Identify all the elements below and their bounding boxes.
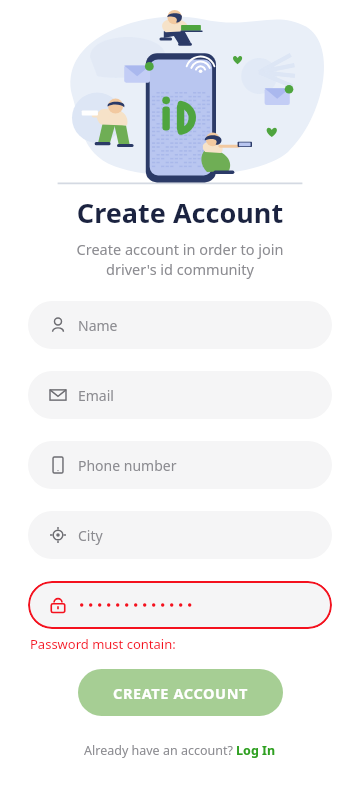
staticText: Password must contain: — [30, 635, 176, 653]
button[interactable]: CREATE ACCOUNT — [78, 669, 283, 716]
staticText: Phone number — [78, 456, 177, 475]
button[interactable]: Phone number — [28, 441, 332, 489]
button[interactable]: Email — [28, 371, 332, 419]
button[interactable]: City — [28, 511, 332, 559]
staticText: Email — [78, 386, 114, 405]
button[interactable]: Name — [28, 301, 332, 349]
button[interactable]: Already have an account? Log In — [84, 742, 276, 759]
staticText: Name — [78, 316, 118, 335]
staticText: City — [78, 526, 103, 545]
staticText: Already have an account? Log In — [84, 742, 276, 759]
staticText: CREATE ACCOUNT — [113, 683, 248, 703]
button[interactable] — [28, 581, 332, 629]
staticText: Create account in order to join driver's… — [0, 239, 360, 279]
staticText: Create Account — [0, 194, 360, 231]
